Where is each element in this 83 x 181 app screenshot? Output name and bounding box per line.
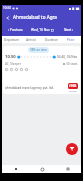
button[interactable]: Departure	[2, 36, 21, 43]
staticText: Departure	[4, 38, 19, 42]
staticText: ahmdabad travel agency pvt. ltd.	[5, 86, 54, 90]
button[interactable]: Back	[2, 12, 13, 23]
button[interactable]: Home	[29, 165, 55, 173]
staticText: 04:40, 04 Nov	[57, 55, 78, 59]
staticText: 10.50	[5, 54, 16, 60]
staticText: Duration	[45, 38, 58, 42]
staticText: 30 seats	[66, 62, 78, 66]
staticText: Ahmedabad to Agra	[13, 14, 57, 20]
button[interactable]: Arrival	[21, 36, 41, 43]
staticText: 98% on time	[30, 48, 47, 52]
button[interactable]: 98% on time	[3, 46, 80, 94]
staticText: AC, Sleeper	[5, 62, 21, 66]
staticText: ‹ Previous	[8, 28, 23, 32]
button[interactable]: Price	[61, 36, 81, 43]
button[interactable]: Filter	[66, 143, 78, 155]
staticText: ₹965	[69, 84, 77, 88]
button[interactable]: Recents	[55, 165, 81, 173]
button[interactable]: Wed, 16 Nov	[29, 23, 55, 36]
staticText: Wed, 16 Nov	[31, 28, 50, 32]
staticText: Price	[67, 38, 75, 42]
button[interactable]: Back	[2, 165, 29, 173]
button[interactable]: ‹ Previous	[2, 23, 29, 36]
staticText: Arrival	[26, 38, 36, 42]
staticText: 10:34	[3, 6, 11, 10]
staticText: Next ›	[64, 28, 73, 32]
button[interactable]: Next ›	[55, 23, 81, 36]
staticText: Private	[69, 89, 77, 92]
button[interactable]: Duration	[41, 36, 61, 43]
